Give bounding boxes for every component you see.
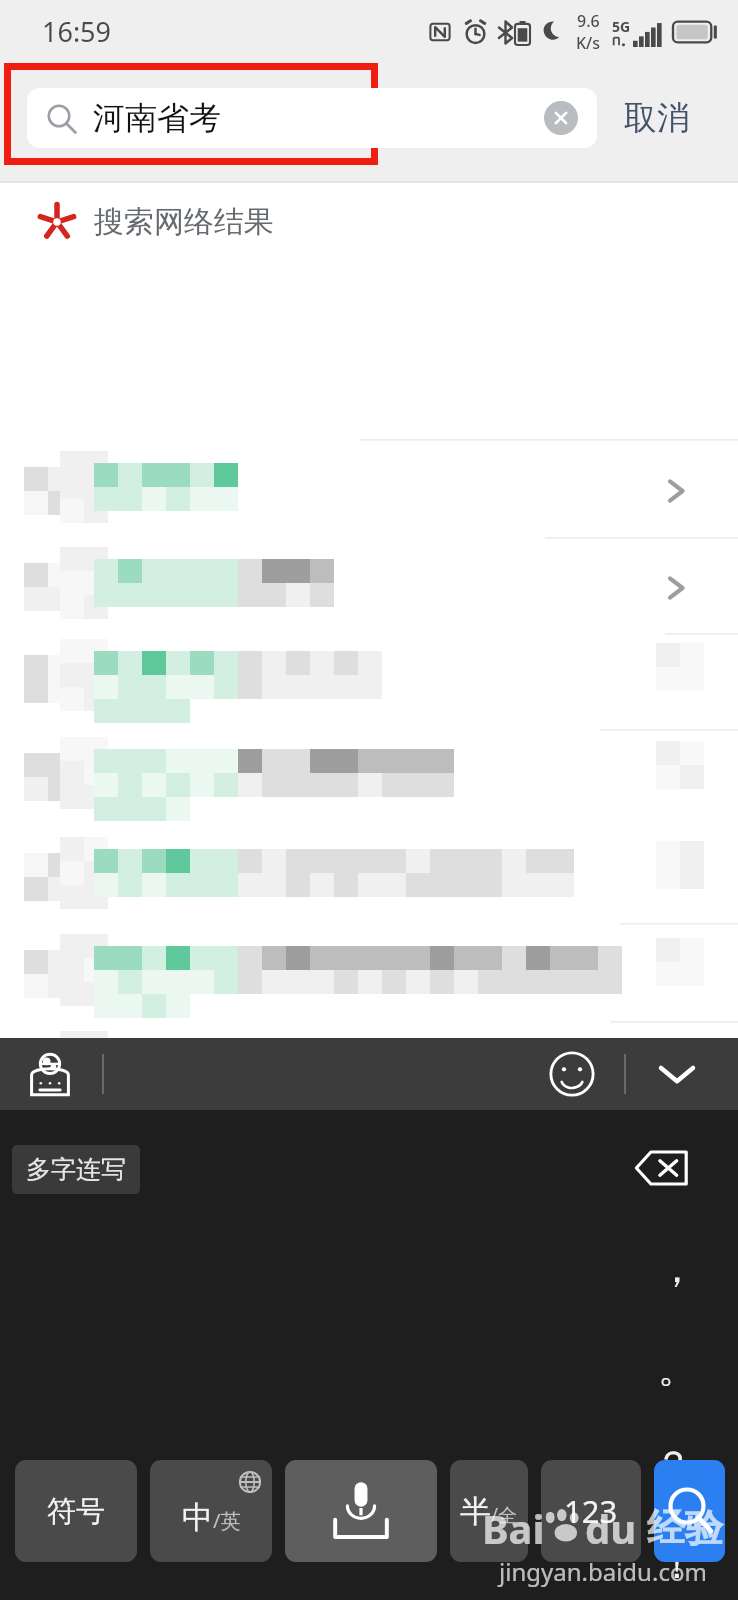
button[interactable]: 空格: [285, 1460, 437, 1562]
button[interactable]: 多字连写: [12, 1145, 140, 1194]
staticText: ！: [658, 1541, 696, 1589]
button[interactable]: 表情: [544, 1046, 600, 1102]
staticText: 16:59: [42, 13, 112, 50]
button[interactable]: 切换输入语言: [22, 1046, 78, 1102]
staticText: /英: [213, 1507, 241, 1534]
button[interactable]: ！: [640, 1528, 714, 1600]
button[interactable]: ，: [640, 1232, 714, 1306]
button[interactable]: 中英切换: [150, 1460, 272, 1562]
staticText: 取消: [624, 97, 690, 139]
button[interactable]: 河南省考: [27, 88, 597, 148]
button[interactable]: 收起键盘: [646, 1043, 708, 1105]
button[interactable]: ？: [636, 1428, 710, 1502]
staticText: 河南省考: [93, 98, 221, 138]
button[interactable]: 打开: [650, 1145, 702, 1197]
staticText: 中: [182, 1498, 213, 1537]
staticText: ，: [658, 1245, 696, 1293]
staticText: K/s: [576, 32, 601, 54]
staticText: ？: [654, 1441, 692, 1489]
staticText: Bai: [482, 1501, 545, 1555]
staticText: 5G: [612, 17, 631, 36]
button[interactable]: 符号: [15, 1460, 137, 1562]
staticText: 经验: [647, 1504, 723, 1552]
button[interactable]: 打开: [650, 465, 702, 517]
button[interactable]: 。: [640, 1332, 714, 1406]
staticText: 半: [460, 1492, 491, 1531]
button[interactable]: 打开: [650, 562, 702, 614]
other: 爱奇艺: [38, 203, 76, 241]
button[interactable]: 爱奇艺: [38, 203, 274, 241]
staticText: 符号: [47, 1493, 105, 1530]
staticText: 搜索网络结果: [94, 203, 274, 241]
staticText: 。: [658, 1345, 696, 1393]
button[interactable]: 搜索: [654, 1460, 725, 1562]
staticText: 多字连写: [26, 1154, 126, 1185]
staticText: 123: [564, 1490, 618, 1532]
staticText: 9.6: [577, 10, 600, 32]
button[interactable]: 取消: [597, 88, 708, 148]
button[interactable]: 清除: [544, 101, 578, 135]
staticText: /全: [491, 1502, 518, 1528]
button[interactable]: 半全角: [450, 1460, 528, 1562]
staticText: du: [585, 1501, 637, 1555]
button[interactable]: 退格: [632, 1142, 690, 1194]
button[interactable]: 123: [541, 1460, 641, 1562]
staticText: jingyan.baidu.com: [499, 1555, 707, 1588]
button[interactable]: 打开: [650, 1048, 702, 1100]
